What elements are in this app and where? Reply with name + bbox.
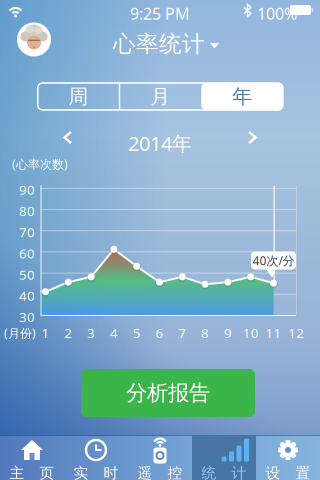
staticText: 8: [201, 324, 209, 342]
staticText: 1: [41, 324, 49, 342]
button[interactable]: 统计: [192, 436, 256, 480]
staticText: 5: [133, 324, 141, 342]
staticText: 10: [243, 324, 259, 342]
staticText: 遥 控: [137, 464, 182, 480]
staticText: 3: [87, 324, 95, 342]
button[interactable]: 用户: [0, 0, 34, 34]
staticText: 12: [288, 324, 304, 342]
button[interactable]: 心率统计 选择: [0, 0, 320, 28]
staticText: 周: [68, 84, 88, 109]
staticText: 设 置: [265, 464, 310, 480]
staticText: 实 时: [73, 464, 118, 480]
staticText: 4: [110, 324, 118, 342]
staticText: 40: [19, 287, 35, 304]
staticText: 2014年: [128, 130, 192, 157]
staticText: 60: [19, 244, 35, 262]
staticText: 月: [150, 84, 170, 109]
staticText: 主 页: [9, 464, 54, 480]
staticText: 80: [19, 202, 35, 220]
staticText: 100%: [257, 3, 297, 24]
button[interactable]: 设置: [256, 436, 320, 480]
staticText: 6: [155, 324, 163, 342]
staticText: 30: [19, 308, 35, 326]
staticText: 40次/分: [252, 252, 294, 268]
button[interactable]: 遥控: [128, 436, 192, 480]
button[interactable]: 上一年: [58, 126, 78, 150]
staticText: 年: [232, 84, 252, 109]
button[interactable]: 周: [38, 83, 119, 110]
staticText: 分析报告: [126, 380, 210, 406]
staticText: 50: [19, 266, 35, 283]
staticText: 7: [178, 324, 186, 342]
button[interactable]: 下一年: [242, 126, 262, 150]
button[interactable]: 主页: [0, 436, 64, 480]
staticText: 70: [19, 223, 35, 241]
button[interactable]: 月: [38, 83, 119, 110]
staticText: 9: [224, 324, 232, 342]
button[interactable]: 年: [38, 83, 120, 110]
staticText: (心率次数): [12, 156, 68, 172]
button[interactable]: 实时: [64, 436, 128, 480]
staticText: 11: [265, 324, 281, 342]
staticText: 2: [64, 324, 72, 342]
staticText: 90: [19, 181, 35, 198]
staticText: (月份): [4, 325, 36, 341]
staticText: 统 计: [201, 464, 246, 480]
button[interactable]: 分析报告: [81, 369, 255, 417]
staticText: 心率统计: [113, 30, 205, 58]
staticText: 9:25 PM: [130, 3, 190, 24]
